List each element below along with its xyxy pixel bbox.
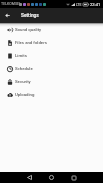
button[interactable]: Sound quality — [0, 23, 103, 36]
button[interactable]: Home — [46, 172, 57, 183]
button[interactable]: Schedule — [0, 62, 103, 75]
staticText: Files and folders — [15, 40, 47, 45]
button[interactable]: Uploading — [0, 88, 103, 101]
staticText: TELKOMSEL — [1, 2, 22, 6]
staticText: Schedule — [15, 66, 33, 71]
button[interactable]: Back — [24, 172, 35, 183]
button[interactable]: Recent apps — [68, 172, 79, 183]
staticText: Sound quality — [15, 27, 42, 32]
button[interactable]: Back — [3, 11, 12, 20]
button[interactable]: Limits — [0, 49, 103, 62]
button[interactable]: Files and folders — [0, 36, 103, 49]
staticText: Limits — [15, 53, 27, 58]
staticText: Security — [15, 79, 31, 84]
staticText: LTE — [76, 3, 82, 7]
button[interactable]: Security — [0, 75, 103, 88]
staticText: Settings — [21, 13, 39, 19]
staticText: Uploading — [15, 92, 35, 97]
staticText: 23:41 — [90, 2, 101, 7]
